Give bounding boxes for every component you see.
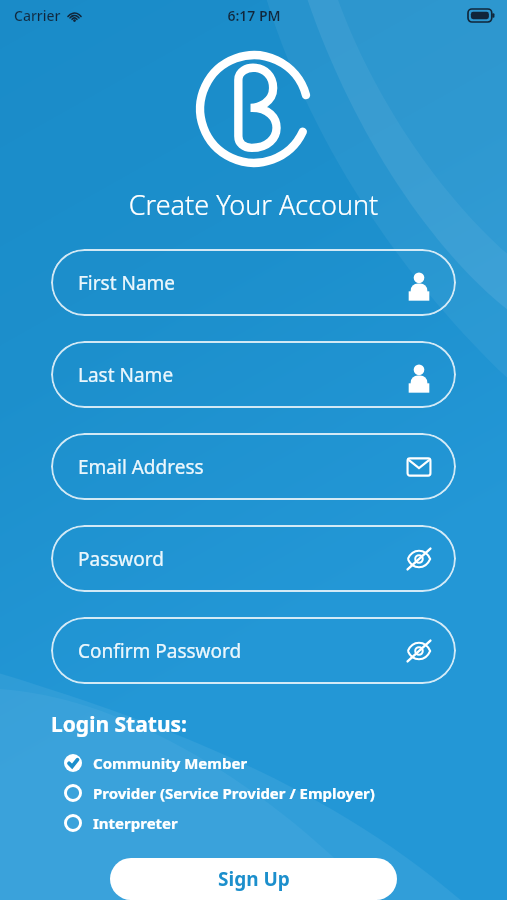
staticText: Login Status: [51,710,187,739]
other: Email [406,454,432,480]
button[interactable]: Interpreter [51,808,483,838]
staticText: Community Member [93,753,248,773]
staticText: Last Name [78,362,174,388]
button[interactable]: Provider (Service Provider / Employer) [51,778,483,808]
staticText: Carrier [14,6,61,25]
staticText: 6:17 PM [227,6,281,25]
other: Show password [406,638,432,664]
staticText: Interpreter [93,813,178,833]
other: Name [406,270,432,296]
button[interactable]: Community Member [51,748,483,778]
staticText: Confirm Password [78,638,242,664]
button[interactable]: Sign Up [110,858,397,900]
button[interactable]: First Name [51,249,456,316]
button[interactable]: Password [51,525,456,592]
other: Show password [406,546,432,572]
staticText: Email Address [78,454,204,480]
button[interactable]: Email Address [51,433,456,500]
staticText: Provider (Service Provider / Employer) [93,783,375,803]
staticText: Create Your Account [0,186,507,223]
button[interactable]: Last Name [51,341,456,408]
staticText: First Name [78,270,176,296]
other: Name [406,362,432,388]
staticText: Password [78,546,164,572]
staticText: Sign Up [218,866,290,892]
button[interactable]: Confirm Password [51,617,456,684]
